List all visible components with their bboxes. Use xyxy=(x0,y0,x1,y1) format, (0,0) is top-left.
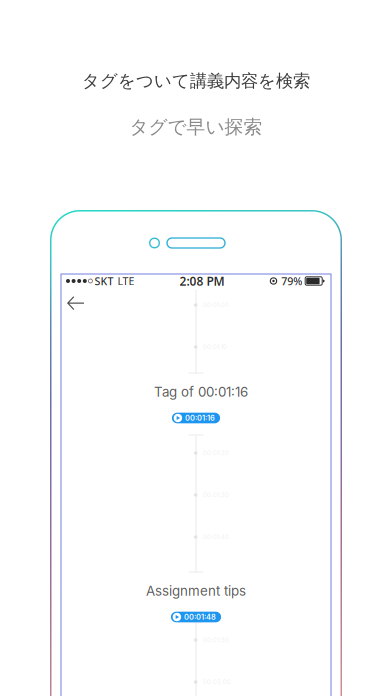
staticText: タグをついて講義内容を検索 xyxy=(82,70,310,92)
staticText: 79% xyxy=(281,274,302,288)
staticText: 00:02:00 xyxy=(203,678,231,686)
staticText: 00:01:20 xyxy=(203,449,229,457)
button[interactable]: Back xyxy=(63,291,89,314)
button[interactable]: 00:01:48 xyxy=(171,612,221,622)
staticText: タグで早い探索 xyxy=(129,115,262,138)
staticText: 00:01:16 xyxy=(185,413,215,422)
staticText: 00:01:50 xyxy=(203,636,229,644)
staticText: 00:01:48 xyxy=(184,612,216,621)
staticText: Assignment tips xyxy=(146,583,246,599)
staticText: Tag of 00:01:16 xyxy=(154,384,248,400)
staticText: 00:01:10 xyxy=(203,343,227,351)
staticText: 2:08 PM xyxy=(180,273,225,289)
staticText: 00:01:00 xyxy=(203,301,229,309)
button[interactable]: 00:01:16 xyxy=(172,413,220,423)
staticText: LTE xyxy=(117,274,134,288)
staticText: SKT xyxy=(94,274,113,288)
staticText: 00:01:30 xyxy=(203,491,229,499)
staticText: 00:01:40 xyxy=(203,533,229,541)
